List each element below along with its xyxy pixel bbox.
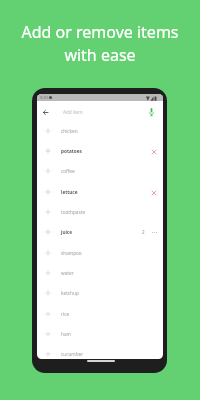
staticText: lettuce bbox=[61, 189, 78, 195]
staticText: potatoes bbox=[61, 148, 82, 154]
button[interactable]: rice bbox=[37, 304, 163, 324]
staticText: juice bbox=[61, 229, 73, 235]
button[interactable]: ham bbox=[37, 324, 163, 344]
button[interactable]: juice bbox=[37, 222, 163, 242]
button[interactable]: coffee bbox=[37, 161, 163, 181]
staticText: ketchup bbox=[61, 290, 79, 296]
button[interactable]: cucumber bbox=[37, 344, 163, 359]
staticText: chicken bbox=[61, 128, 78, 134]
button[interactable]: Voice search bbox=[145, 105, 158, 118]
button[interactable]: ketchup bbox=[37, 283, 163, 303]
button[interactable]: toothpaste bbox=[37, 202, 163, 222]
button[interactable]: Back bbox=[37, 104, 53, 120]
button[interactable]: lettuce bbox=[37, 182, 163, 202]
staticText: ham bbox=[61, 331, 71, 337]
button[interactable]: shampoo bbox=[37, 243, 163, 263]
staticText: coffee bbox=[61, 168, 75, 174]
staticText: shampoo bbox=[61, 250, 82, 256]
staticText: 9:30 bbox=[40, 95, 48, 100]
staticText: 2 bbox=[142, 229, 145, 235]
staticText: Add or remove items with ease bbox=[21, 21, 179, 66]
staticText: toothpaste bbox=[61, 209, 86, 215]
staticText: cucumber bbox=[61, 351, 84, 357]
staticText: rice bbox=[61, 311, 70, 317]
staticText: water bbox=[61, 270, 74, 276]
button[interactable]: water bbox=[37, 263, 163, 283]
staticText: Add item bbox=[63, 109, 83, 115]
button[interactable]: potatoes bbox=[37, 141, 163, 161]
button[interactable]: chicken bbox=[37, 121, 163, 141]
